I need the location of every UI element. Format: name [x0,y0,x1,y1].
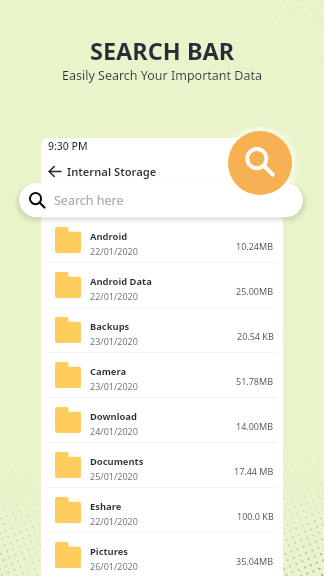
button[interactable]: Back [48,160,283,182]
staticText: Camera [90,365,127,378]
staticText: 35.04MB [236,555,274,567]
button[interactable]: Search [228,131,292,195]
staticText: Backups [90,320,130,333]
button[interactable]: Pictures [41,533,283,576]
button[interactable]: Download [41,398,283,443]
staticText: 25/01/2020 [90,470,138,482]
staticText: 100.0 KB [237,510,274,522]
staticText: 23/01/2020 [90,335,138,347]
button[interactable]: Backups [41,308,283,353]
staticText: 25.00MB [236,285,274,297]
staticText: Android Data [90,275,152,288]
button[interactable]: Camera [41,353,283,398]
other: Back [48,165,61,178]
staticText: Android [90,230,128,243]
button[interactable]: Search here [19,183,303,217]
staticText: 10.24MB [236,240,274,252]
staticText: 22/01/2020 [90,245,138,257]
staticText: Documents [90,455,144,468]
staticText: 9:30 PM [48,139,88,153]
staticText: 20.54 KB [237,330,274,342]
button[interactable]: Android Data [41,263,283,308]
staticText: 22/01/2020 [90,515,138,527]
staticText: Pictures [90,545,128,558]
staticText: 26/01/2020 [90,560,138,572]
staticText: 23/01/2020 [90,380,138,392]
button[interactable]: Eshare [41,488,283,533]
staticText: 51.78MB [236,375,274,387]
staticText: Easily Search Your Important Data [62,67,263,84]
staticText: 14.00MB [236,420,274,432]
staticText: Search here [54,192,124,209]
staticText: Eshare [90,500,122,513]
staticText: 22/01/2020 [90,290,138,302]
staticText: Internal Storage [67,164,157,179]
staticText: SEARCH BAR [90,35,235,67]
button[interactable]: Documents [41,443,283,488]
staticText: 17.44 MB [234,465,274,477]
staticText: Download [90,410,137,423]
button[interactable]: Android [41,218,283,263]
staticText: 24/01/2020 [90,425,138,437]
